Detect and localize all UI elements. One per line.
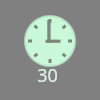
staticText: 30 <box>37 63 58 88</box>
